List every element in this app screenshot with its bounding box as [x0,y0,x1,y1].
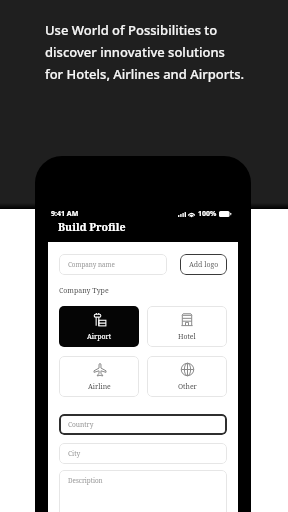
button[interactable]: Description [59,470,227,512]
staticText: Other [178,382,197,391]
staticText: Country [68,420,94,429]
staticText: Company name [68,260,115,269]
button[interactable]: Hotel [147,306,227,347]
button[interactable]: Country [59,414,227,435]
staticText: Hotel [178,332,196,341]
staticText: Build Profile [58,220,126,234]
staticText: Airport [87,332,112,341]
staticText: Airline [88,382,111,391]
staticText: Add logo [189,260,219,270]
staticText: Description [68,476,103,485]
button[interactable]: City [59,443,227,464]
button[interactable]: Add logo [180,254,227,275]
staticText: Use World of Possibilities to discover i… [45,21,245,83]
button[interactable]: Other [147,356,227,397]
staticText: 100% [198,209,217,219]
staticText: Company Type [59,286,109,296]
staticText: City [68,449,81,458]
button[interactable]: Company name [59,254,167,275]
button[interactable]: Airline [59,356,139,397]
staticText: 9:41 AM [51,209,79,219]
button[interactable]: Airport [59,306,139,347]
